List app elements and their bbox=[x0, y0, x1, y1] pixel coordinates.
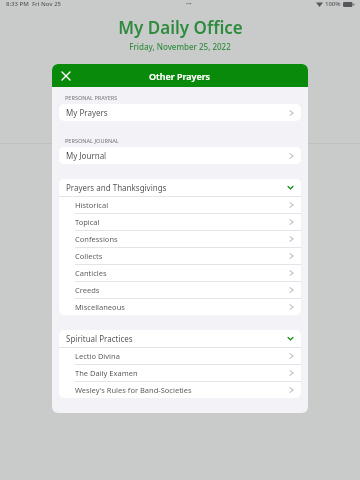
button[interactable]: Close bbox=[58, 68, 74, 84]
staticText: Friday, November 25, 2022 bbox=[129, 41, 231, 52]
staticText: 8:33 PM Fri Nov 25 bbox=[6, 0, 62, 8]
button[interactable]: Confessions bbox=[59, 231, 301, 247]
button[interactable]: The Daily Examen bbox=[59, 365, 301, 381]
button[interactable]: Lectio Divina bbox=[59, 348, 301, 364]
staticText: My Daily Office bbox=[118, 16, 243, 39]
button[interactable]: My Journal bbox=[59, 147, 301, 164]
staticText: Other Prayers bbox=[149, 70, 211, 82]
staticText: 100% bbox=[325, 0, 341, 8]
button[interactable]: Historical bbox=[59, 197, 301, 213]
staticText: Lectio Divina bbox=[75, 351, 120, 361]
staticText: Topical bbox=[75, 217, 100, 227]
staticText: PERSONAL PRAYERS bbox=[65, 94, 118, 101]
button[interactable]: My Prayers bbox=[59, 104, 301, 121]
button[interactable]: Canticles bbox=[59, 265, 301, 281]
button[interactable]: Creeds bbox=[59, 282, 301, 298]
button[interactable]: Spiritual Practices bbox=[59, 330, 301, 347]
staticText: Wesley's Rules for Band-Societies bbox=[75, 385, 192, 395]
staticText: Creeds bbox=[75, 285, 100, 295]
staticText: ••• bbox=[186, 1, 192, 8]
button[interactable]: Topical bbox=[59, 214, 301, 230]
staticText: Prayers and Thanksgivings bbox=[66, 182, 167, 193]
staticText: My Journal bbox=[66, 150, 107, 161]
staticText: PERSONAL JOURNAL bbox=[65, 137, 119, 144]
button[interactable]: Wesley's Rules for Band-Societies bbox=[59, 382, 301, 398]
staticText: The Daily Examen bbox=[75, 368, 138, 378]
staticText: Spiritual Practices bbox=[66, 333, 133, 344]
staticText: Historical bbox=[75, 200, 109, 210]
button[interactable]: Prayers and Thanksgivings bbox=[59, 179, 301, 196]
staticText: Canticles bbox=[75, 268, 107, 278]
staticText: My Prayers bbox=[66, 107, 108, 118]
staticText: Miscellaneous bbox=[75, 302, 125, 312]
staticText: Collects bbox=[75, 251, 103, 261]
staticText: Confessions bbox=[75, 234, 118, 244]
button[interactable]: Miscellaneous bbox=[59, 299, 301, 315]
button[interactable]: Collects bbox=[59, 248, 301, 264]
